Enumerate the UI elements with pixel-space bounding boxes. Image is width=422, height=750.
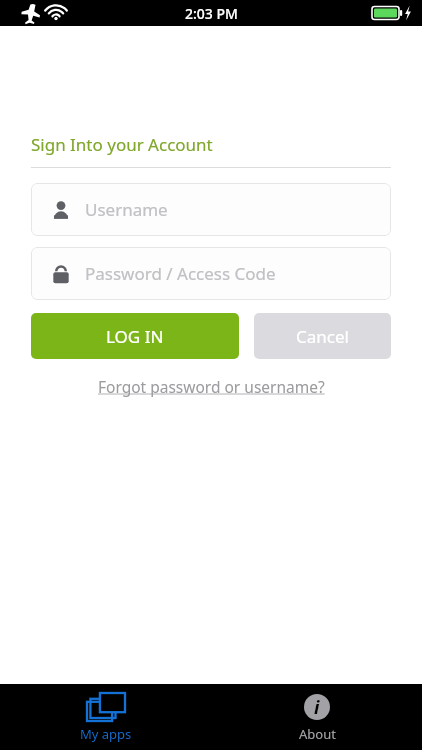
- button[interactable]: My apps: [62, 688, 150, 747]
- staticText: 2:03 PM: [185, 4, 238, 23]
- staticText: Password / Access Code: [85, 262, 276, 285]
- button[interactable]: About: [280, 688, 354, 747]
- staticText: LOG IN: [106, 325, 164, 348]
- staticText: Sign Into your Account: [31, 133, 213, 156]
- staticText: My apps: [80, 725, 132, 743]
- staticText: i: [314, 695, 320, 720]
- button[interactable]: Forgot password or username?: [98, 376, 325, 397]
- staticText: Cancel: [296, 325, 349, 348]
- button[interactable]: Cancel: [254, 313, 391, 359]
- staticText: About: [299, 725, 336, 743]
- button[interactable]: Username: [31, 183, 391, 236]
- staticText: Username: [85, 198, 168, 221]
- button[interactable]: LOG IN: [31, 313, 239, 359]
- button[interactable]: Password / Access Code: [31, 247, 391, 300]
